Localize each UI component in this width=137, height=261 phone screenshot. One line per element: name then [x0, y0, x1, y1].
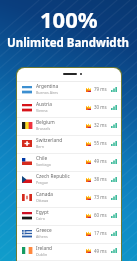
- staticText: Switzerland: [36, 137, 63, 144]
- staticText: 38 ms: [94, 176, 107, 182]
- staticText: Vienna: [36, 108, 48, 113]
- staticText: Greece: [36, 227, 52, 234]
- staticText: Egypt: [36, 209, 49, 216]
- staticText: Argentina: [36, 83, 59, 90]
- button[interactable]: Austria: [17, 100, 121, 118]
- staticText: 17 ms: [94, 230, 107, 236]
- button[interactable]: Chile: [17, 154, 121, 172]
- staticText: 30 ms: [94, 104, 107, 110]
- staticText: Athens: [36, 234, 48, 239]
- staticText: Bern: [36, 144, 45, 149]
- staticText: Cairo: [36, 216, 45, 221]
- staticText: Brussels: [36, 126, 51, 131]
- button[interactable]: Czech Republic: [17, 172, 121, 190]
- staticText: 73 ms: [94, 194, 107, 200]
- staticText: Czech Republic: [36, 173, 70, 180]
- staticText: Ireland: [36, 245, 53, 252]
- staticText: Ottawa: [36, 198, 49, 203]
- staticText: Belgium: [36, 119, 55, 126]
- staticText: 49 ms: [94, 158, 107, 164]
- staticText: 32 ms: [94, 122, 107, 128]
- button[interactable]: Greece: [17, 226, 121, 244]
- staticText: 79 ms: [94, 86, 107, 92]
- button[interactable]: Ireland: [17, 244, 121, 261]
- button[interactable]: Egypt: [17, 208, 121, 226]
- staticText: 100%: [40, 4, 98, 34]
- button[interactable]: Switzerland: [17, 136, 121, 154]
- staticText: Unlimited Bandwidth: [7, 35, 130, 51]
- staticText: Austria: [36, 101, 52, 108]
- staticText: 55 ms: [94, 140, 107, 146]
- button[interactable]: Argentina: [17, 82, 121, 100]
- staticText: Prague: [36, 180, 49, 185]
- button[interactable]: Canada: [17, 190, 121, 208]
- staticText: Buenos Aires: [36, 90, 59, 95]
- staticText: Chile: [36, 155, 48, 162]
- button[interactable]: Belgium: [17, 118, 121, 136]
- staticText: 49 ms: [94, 248, 107, 254]
- staticText: Dublin: [36, 252, 48, 257]
- staticText: Canada: [36, 191, 54, 198]
- staticText: 60 ms: [94, 212, 107, 218]
- staticText: Santiago: [36, 162, 51, 167]
